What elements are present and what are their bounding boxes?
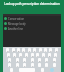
staticText: d — [20, 54, 22, 57]
button[interactable]: x — [16, 58, 19, 62]
staticText: n — [46, 59, 48, 62]
button[interactable]: q — [6, 48, 9, 52]
staticText: m — [53, 59, 56, 62]
button[interactable]: Period — [41, 68, 44, 72]
button[interactable]: 2 — [23, 63, 26, 67]
staticText: g — [32, 54, 34, 57]
staticText: 3 — [32, 64, 34, 67]
staticText: s — [14, 54, 16, 57]
staticText: ? — [9, 64, 11, 67]
staticText: . — [46, 64, 47, 67]
staticText: c — [24, 59, 26, 62]
staticText: 2 — [24, 64, 26, 67]
staticText: Another line — [8, 27, 23, 31]
staticText: q — [7, 49, 9, 52]
button[interactable]: Another line — [4, 26, 61, 31]
staticText: h — [37, 54, 39, 57]
button[interactable]: d — [19, 53, 22, 57]
button[interactable]: Message body — [4, 21, 61, 26]
button[interactable]: o — [49, 48, 52, 52]
button[interactable]: Symbols — [10, 68, 13, 72]
button[interactable]: 3 — [31, 63, 34, 67]
button[interactable]: 1 — [16, 63, 19, 67]
staticText: Lookup path prescription determination — [2, 2, 62, 6]
staticText: l — [55, 54, 56, 57]
staticText: v — [32, 59, 34, 62]
staticText: f — [26, 54, 27, 57]
button[interactable]: s — [13, 53, 16, 57]
button[interactable]: g — [31, 53, 34, 57]
button[interactable]: . — [45, 63, 48, 67]
button[interactable]: v — [31, 58, 34, 62]
staticText: j — [43, 54, 44, 57]
staticText: t — [29, 49, 30, 52]
staticText: o — [50, 49, 52, 52]
staticText: e — [18, 49, 20, 52]
button[interactable]: k — [48, 53, 51, 57]
staticText: r — [23, 49, 25, 52]
button[interactable]: Conversation — [4, 16, 61, 21]
button[interactable]: t — [28, 48, 31, 52]
staticText: w — [13, 49, 15, 52]
button[interactable]: e — [17, 48, 20, 52]
staticText: Message body — [8, 22, 26, 26]
button[interactable]: y — [33, 48, 36, 52]
button[interactable]: u — [39, 48, 42, 52]
button[interactable]: ? — [8, 63, 11, 67]
staticText: x — [17, 59, 19, 62]
staticText: u — [40, 49, 42, 52]
button[interactable]: z — [8, 58, 11, 62]
staticText: z — [9, 59, 11, 62]
button[interactable]: f — [25, 53, 28, 57]
button[interactable]: w — [12, 48, 15, 52]
button[interactable]: h — [36, 53, 39, 57]
button[interactable]: Send — [50, 68, 54, 72]
button[interactable]: j — [42, 53, 45, 57]
staticText: y — [34, 49, 36, 52]
button[interactable]: n — [45, 58, 48, 62]
button[interactable]: i — [44, 48, 47, 52]
button[interactable] — [53, 63, 56, 67]
button[interactable]: p — [55, 48, 58, 52]
button[interactable]: m — [53, 58, 56, 62]
button[interactable] — [38, 63, 41, 67]
staticText: b — [39, 59, 41, 62]
staticText: 1 — [17, 64, 19, 67]
staticText: k — [49, 54, 51, 57]
staticText: p — [56, 49, 58, 52]
staticText: Conversation — [8, 17, 25, 21]
button[interactable]: b — [38, 58, 41, 62]
staticText: i — [45, 49, 46, 52]
button[interactable]: l — [54, 53, 57, 57]
button[interactable]: a — [7, 53, 10, 57]
button[interactable]: r — [22, 48, 25, 52]
staticText: a — [8, 54, 10, 57]
button[interactable]: c — [23, 58, 26, 62]
